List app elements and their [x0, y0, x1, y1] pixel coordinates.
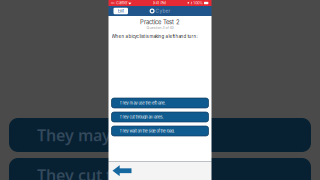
staticText: 9:41 PM: [153, 1, 166, 5]
staticText: They cut through all lanes.: [119, 115, 163, 119]
staticText: They may use the left lane.: [119, 101, 165, 105]
staticText: When a bicyclist is making a left hand t…: [111, 34, 197, 39]
button[interactable]: They wait on the side of the road.: [108, 126, 211, 136]
button[interactable]: Previous question: [111, 163, 132, 178]
button[interactable]: They cut through all lanes.: [108, 112, 211, 122]
staticText: Exit: [118, 8, 124, 13]
staticText: Question 3 of 40: [146, 26, 173, 30]
staticText: 100%: [193, 1, 203, 5]
staticText: They cut thro: [37, 164, 139, 180]
staticText: Carrier: [116, 1, 127, 5]
button[interactable]: They may use the left lane.: [108, 98, 211, 108]
button[interactable]: Exit: [113, 8, 128, 14]
staticText: They wait on the side of the road.: [119, 129, 174, 133]
staticText: Cyber: [155, 8, 170, 14]
staticText: They may use: [37, 124, 142, 146]
staticText: Practice Test 2: [140, 18, 180, 26]
